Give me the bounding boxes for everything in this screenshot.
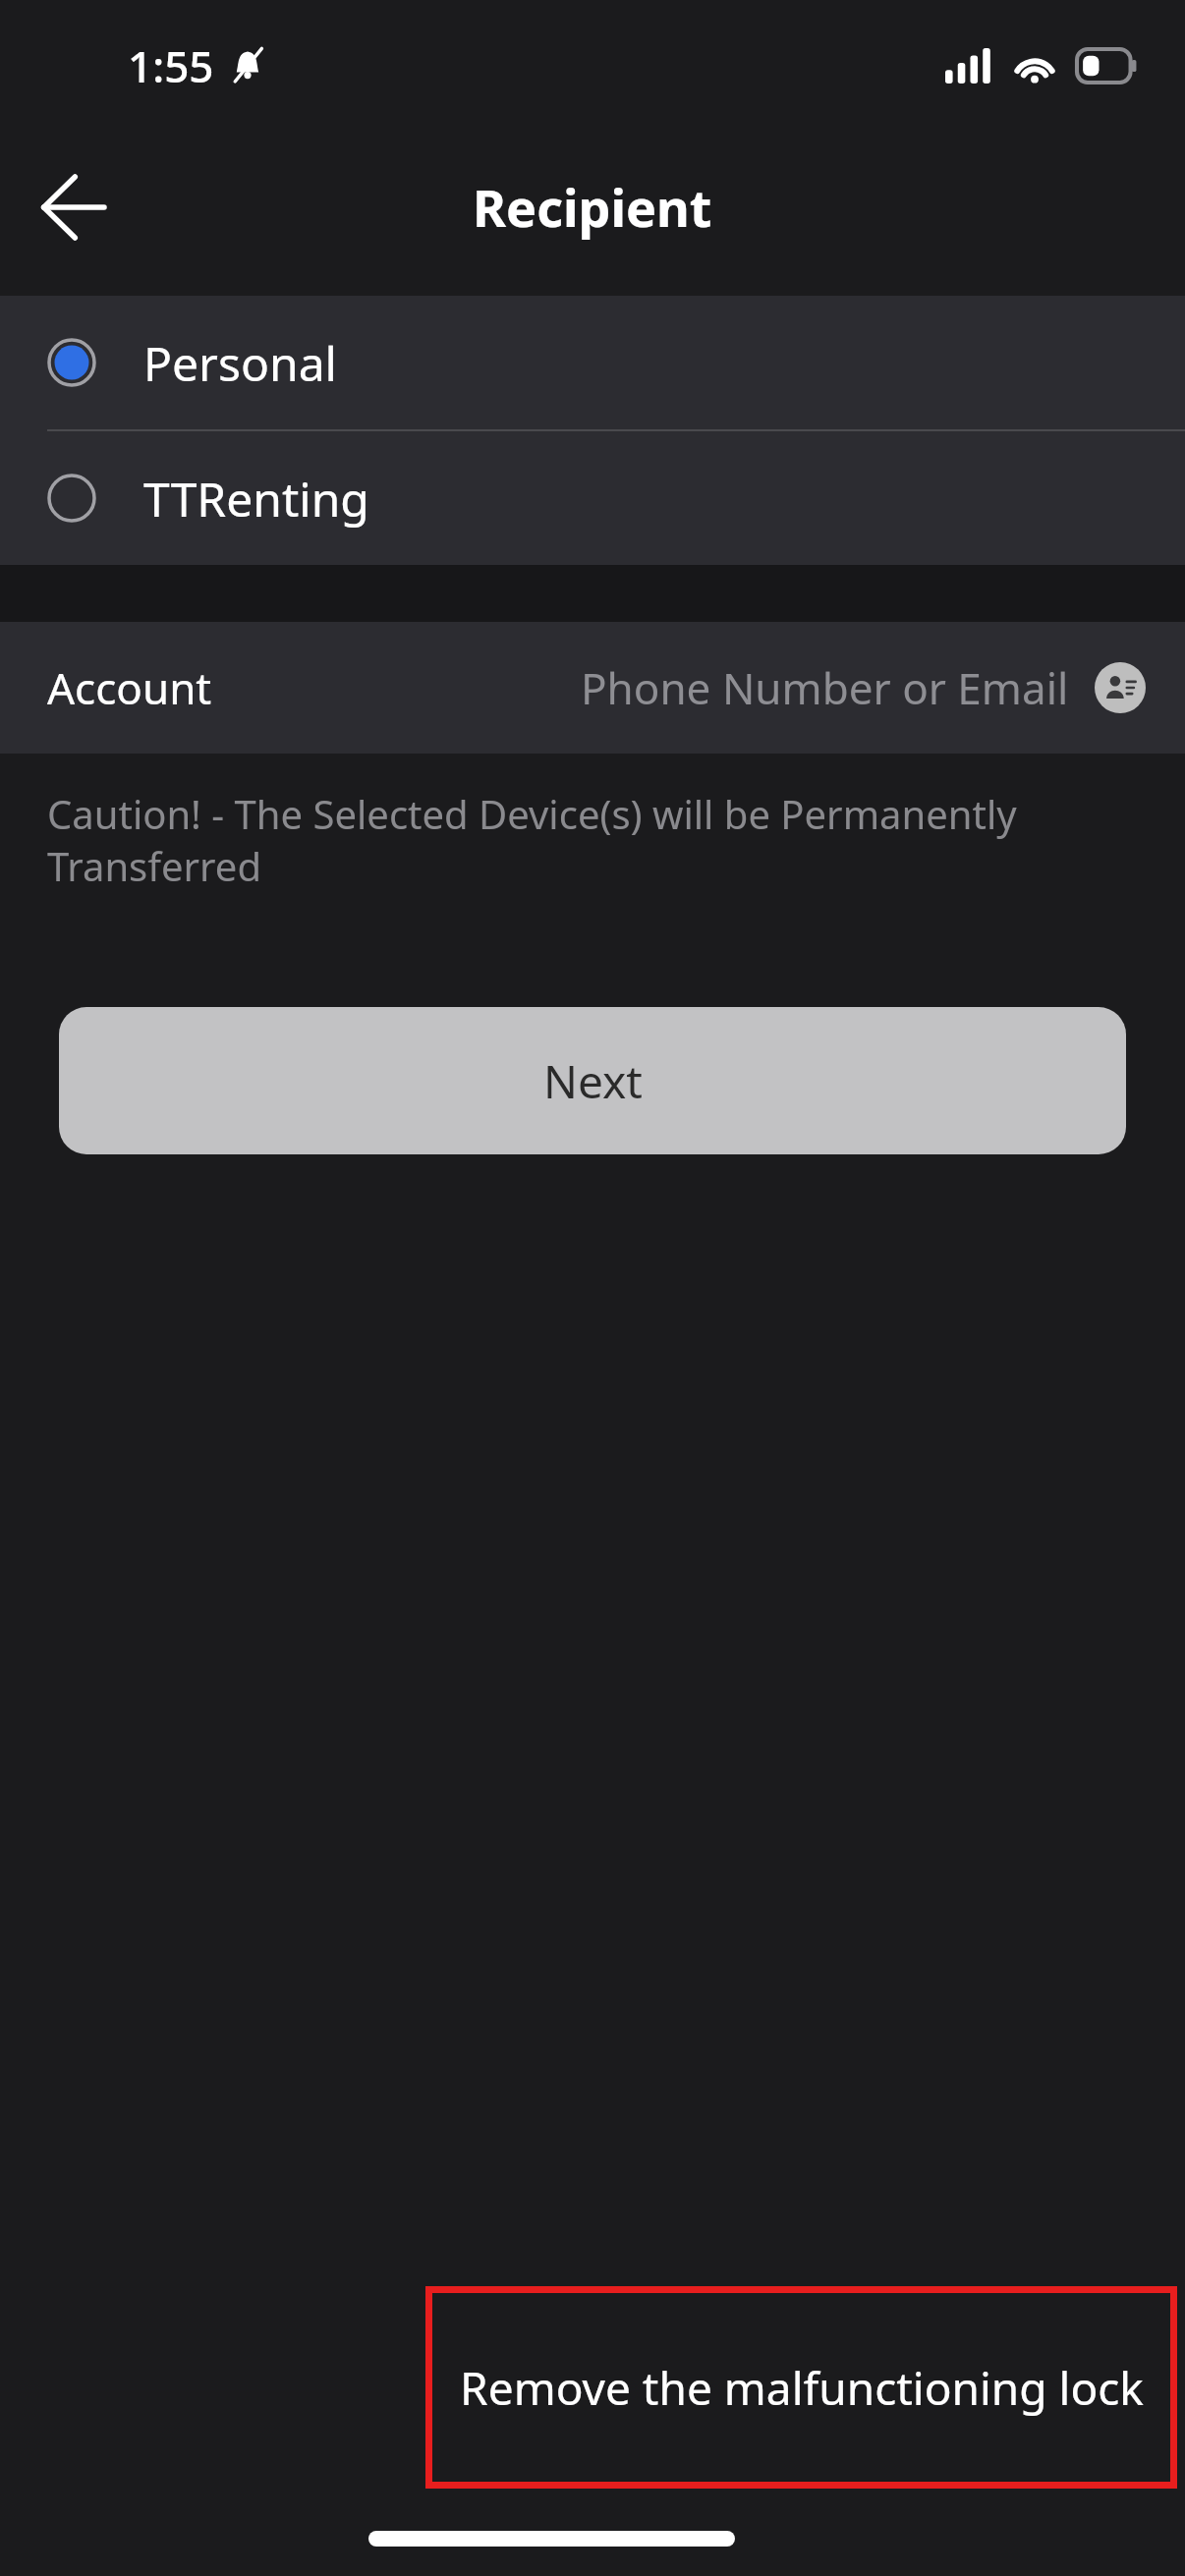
button[interactable]: Account (0, 622, 1185, 754)
staticText: Next (543, 1050, 643, 1112)
button[interactable]: Remove the malfunctioning lock (425, 2286, 1177, 2489)
button[interactable]: Back (20, 153, 128, 261)
staticText: Remove the malfunctioning lock (460, 2357, 1144, 2419)
button[interactable]: TTRenting (0, 431, 1185, 565)
button[interactable]: Personal (0, 296, 1185, 429)
button[interactable]: Next (59, 1007, 1126, 1154)
staticText: Recipient (473, 172, 712, 242)
button[interactable]: Choose contact (1095, 662, 1146, 713)
staticText: Caution! - The Selected Device(s) will b… (47, 787, 1087, 893)
staticText: TTRenting (143, 467, 369, 531)
staticText: Phone Number or Email (581, 658, 1069, 717)
staticText: Personal (143, 331, 337, 395)
staticText: Account (47, 658, 212, 717)
staticText: 1:55 (128, 36, 214, 95)
